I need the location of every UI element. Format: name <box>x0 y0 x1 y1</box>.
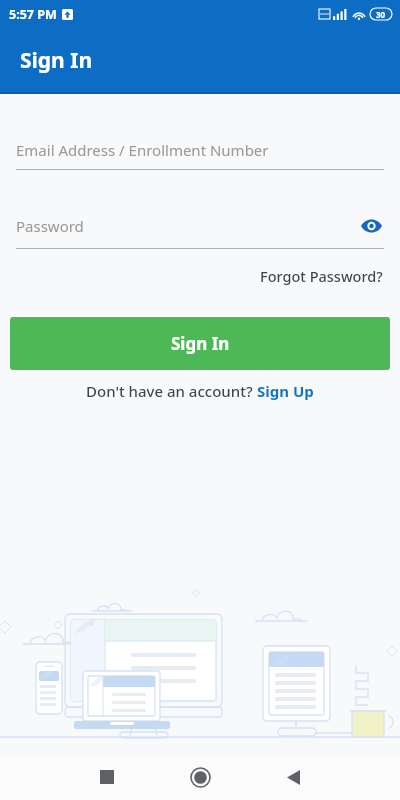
staticText: 30 <box>376 9 386 20</box>
button[interactable]: Forgot Password? <box>243 262 400 290</box>
button[interactable]: Recents <box>83 754 131 800</box>
staticText: Sign In <box>171 332 230 355</box>
button[interactable]: Sign Up <box>257 381 314 401</box>
button[interactable]: Sign In <box>10 317 390 370</box>
staticText: Password <box>16 216 84 236</box>
button[interactable]: Back <box>269 754 317 800</box>
button[interactable]: Password <box>16 213 384 249</box>
button[interactable]: Home <box>176 754 224 800</box>
button[interactable]: Email Address / Enrollment Number <box>16 140 384 170</box>
staticText: Sign In <box>20 46 93 75</box>
staticText: 5:57 PM <box>9 6 57 23</box>
staticText: Don't have an account? <box>86 381 257 401</box>
staticText: Sign Up <box>257 381 314 401</box>
staticText: Email Address / Enrollment Number <box>16 140 269 160</box>
staticText: Forgot Password? <box>260 266 383 286</box>
button[interactable]: Show password <box>358 213 384 239</box>
